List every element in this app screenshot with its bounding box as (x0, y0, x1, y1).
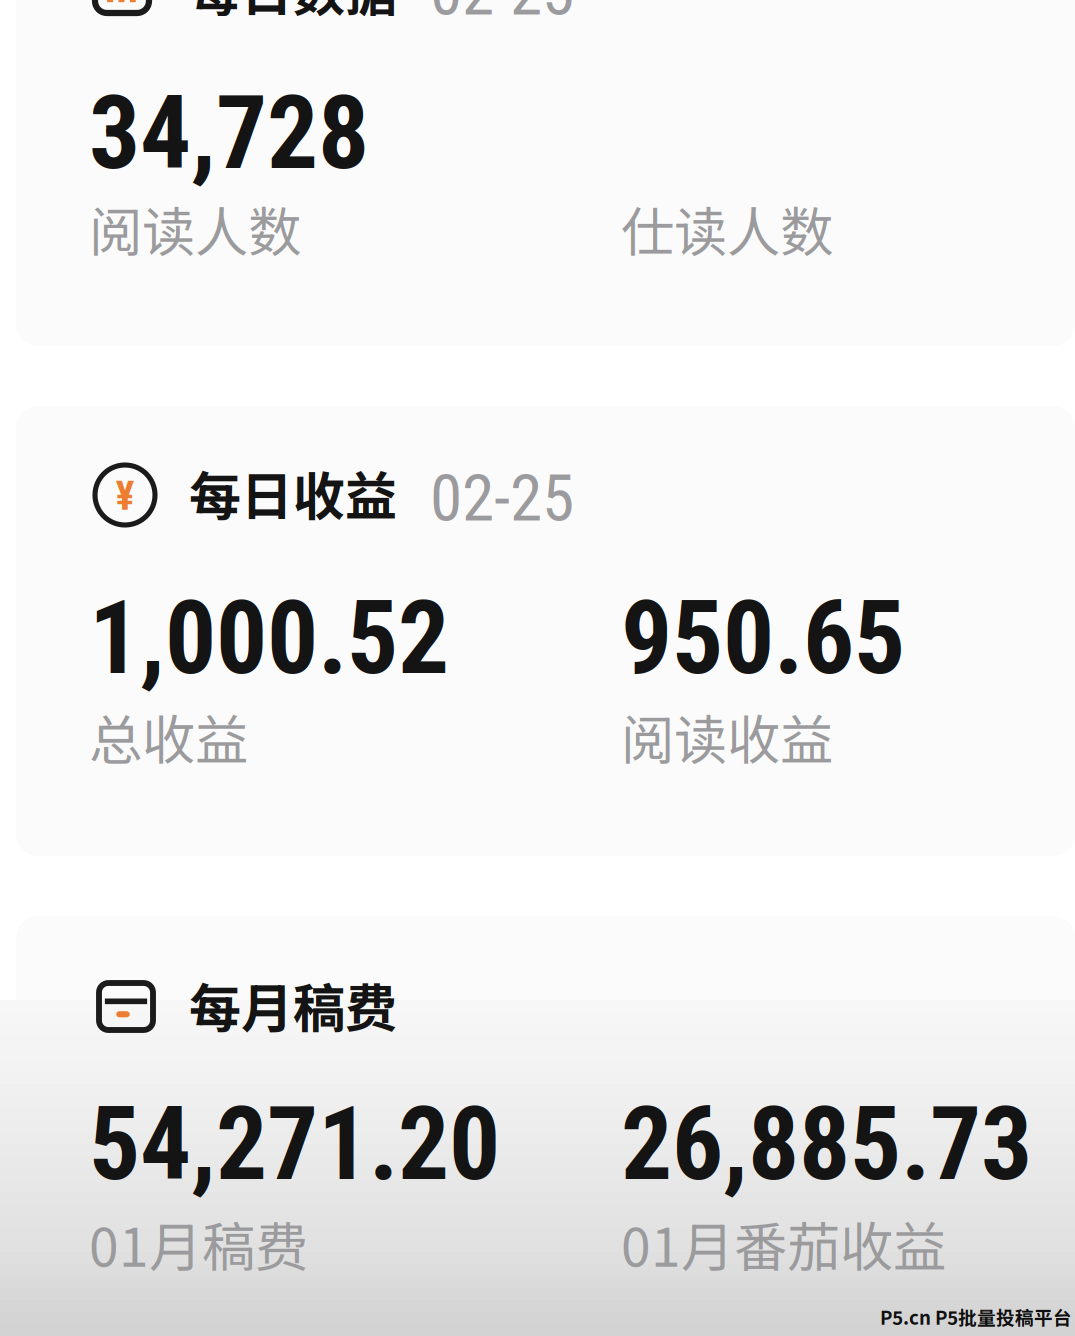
staticText: 01月番茄收益 (621, 1205, 946, 1282)
staticText: 每日收益 (189, 455, 397, 530)
staticText: 总收益 (89, 698, 248, 775)
staticText: 阅读人数 (89, 190, 301, 267)
staticText: 02-25 (430, 0, 574, 31)
staticText: P5.cn P5批量投稿平台 (880, 1303, 1072, 1330)
staticText: 阅读收益 (621, 698, 833, 775)
staticText: 01月稿费 (89, 1205, 308, 1282)
staticText: 34,728 (89, 74, 369, 193)
staticText: ¥ (115, 473, 134, 520)
staticText: 02-25 (430, 460, 574, 537)
staticText: 54,271.20 (89, 1085, 500, 1204)
staticText: 1,000.52 (89, 579, 449, 698)
staticText: 每日数据 (189, 0, 397, 26)
staticText: 950.65 (621, 579, 905, 698)
staticText: 26,885.73 (621, 1085, 1032, 1204)
staticText: 每月稿费 (189, 967, 397, 1042)
staticText: 仕读人数 (621, 190, 833, 267)
